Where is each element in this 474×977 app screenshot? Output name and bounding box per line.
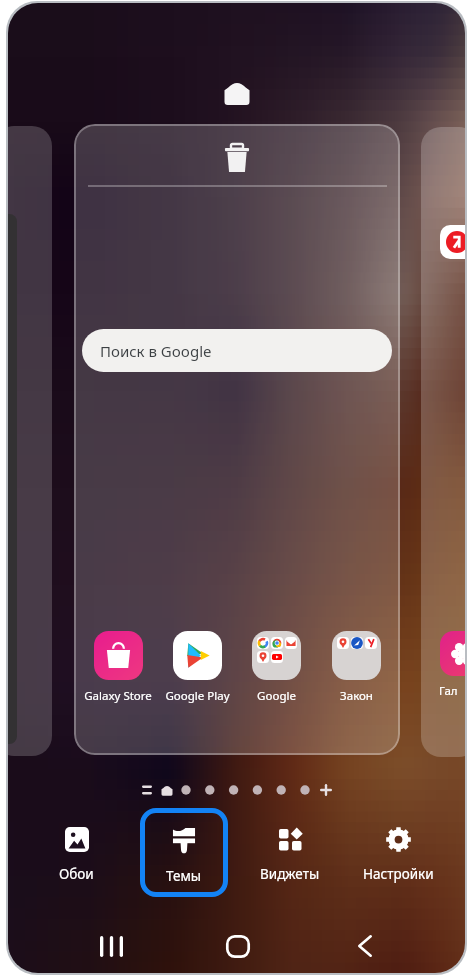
button[interactable]: Wallpapers (32, 808, 120, 897)
button[interactable]: Google Play (158, 624, 236, 710)
button[interactable]: Home (208, 916, 268, 973)
button[interactable]: Themes (140, 808, 228, 897)
staticText: Обои (59, 865, 94, 883)
staticText: Закон (340, 688, 373, 704)
button[interactable]: Закон (317, 624, 395, 710)
button[interactable]: Settings (354, 808, 442, 897)
button[interactable]: Widgets (246, 808, 334, 897)
button[interactable]: Back (335, 916, 395, 973)
staticText: Виджеты (260, 865, 320, 883)
staticText: Galaxy Store (84, 688, 152, 704)
other: Wallpapers (65, 827, 89, 852)
other: Settings (386, 827, 411, 852)
staticText: Google Play (165, 688, 230, 704)
button[interactable]: Поиск в Google (82, 329, 392, 372)
button[interactable]: Recent apps (81, 916, 141, 973)
staticText: Поиск в Google (100, 341, 212, 361)
button[interactable]: Гал (421, 127, 465, 757)
button[interactable] (8, 126, 52, 756)
button[interactable]: Поиск в Google (74, 124, 400, 755)
staticText: Google (257, 688, 296, 704)
staticText: Темы (166, 867, 202, 885)
button[interactable]: Galaxy Store (79, 624, 157, 710)
button[interactable]: Google (237, 624, 315, 710)
staticText: Гал (439, 683, 458, 699)
other: Themes (172, 827, 196, 854)
other: Widgets (278, 827, 303, 852)
staticText: Настройки (363, 865, 434, 883)
